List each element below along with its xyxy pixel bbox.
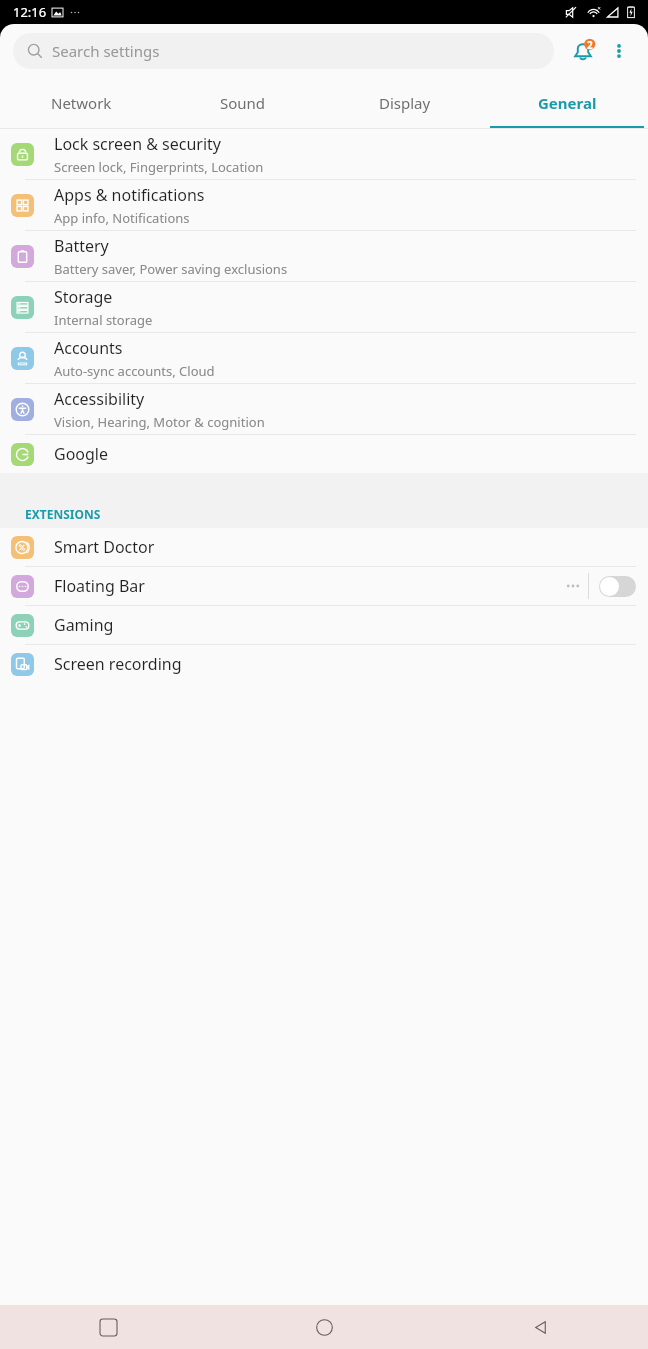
- staticText: Network: [51, 93, 112, 113]
- staticText: Apps & notifications: [54, 184, 205, 206]
- staticText: Accessibility: [54, 388, 145, 410]
- staticText: Internal storage: [54, 311, 153, 329]
- button[interactable]: Home: [216, 1305, 432, 1349]
- button[interactable]: Notifications: [564, 32, 602, 70]
- button[interactable]: Recents: [0, 1305, 216, 1349]
- staticText: General: [538, 93, 597, 113]
- staticText: Battery saver, Power saving exclusions: [54, 260, 288, 278]
- button[interactable]: More options: [602, 34, 636, 68]
- button[interactable]: Apps & notifications: [0, 180, 648, 230]
- button[interactable]: Gaming: [0, 606, 648, 644]
- button[interactable]: Sound: [162, 77, 324, 129]
- staticText: Storage: [54, 286, 113, 308]
- button[interactable]: Floating Bar: [0, 567, 648, 605]
- button[interactable]: Battery: [0, 231, 648, 281]
- staticText: Vision, Hearing, Motor & cognition: [54, 413, 265, 431]
- button[interactable]: Google: [0, 435, 648, 473]
- button[interactable]: Storage: [0, 282, 648, 332]
- staticText: Battery: [54, 235, 109, 257]
- button[interactable]: Lock screen & security: [0, 129, 648, 179]
- staticText: Search settings: [52, 41, 160, 61]
- button[interactable]: Search settings: [13, 33, 554, 69]
- button[interactable]: Display: [324, 77, 486, 129]
- staticText: Lock screen & security: [54, 133, 221, 155]
- button[interactable]: Floating Bar toggle: [599, 576, 636, 597]
- button[interactable]: Network: [0, 77, 162, 129]
- button[interactable]: Accounts: [0, 333, 648, 383]
- button[interactable]: General: [486, 77, 648, 129]
- staticText: Auto-sync accounts, Cloud: [54, 362, 215, 380]
- staticText: Sound: [220, 93, 266, 113]
- button[interactable]: Screen recording: [0, 645, 648, 683]
- staticText: Display: [379, 93, 431, 113]
- staticText: 2: [587, 38, 593, 52]
- button[interactable]: Back: [432, 1305, 648, 1349]
- staticText: Google: [54, 443, 109, 465]
- staticText: 12:16: [13, 3, 47, 21]
- button[interactable]: Options: [558, 571, 588, 601]
- staticText: Gaming: [54, 614, 114, 636]
- button[interactable]: Smart Doctor: [0, 528, 648, 566]
- staticText: EXTENSIONS: [25, 506, 101, 522]
- staticText: Floating Bar: [54, 575, 145, 597]
- button[interactable]: Accessibility: [0, 384, 648, 434]
- staticText: Screen lock, Fingerprints, Location: [54, 158, 264, 176]
- staticText: App info, Notifications: [54, 209, 190, 227]
- staticText: Accounts: [54, 337, 123, 359]
- staticText: Screen recording: [54, 653, 182, 675]
- staticText: Smart Doctor: [54, 536, 155, 558]
